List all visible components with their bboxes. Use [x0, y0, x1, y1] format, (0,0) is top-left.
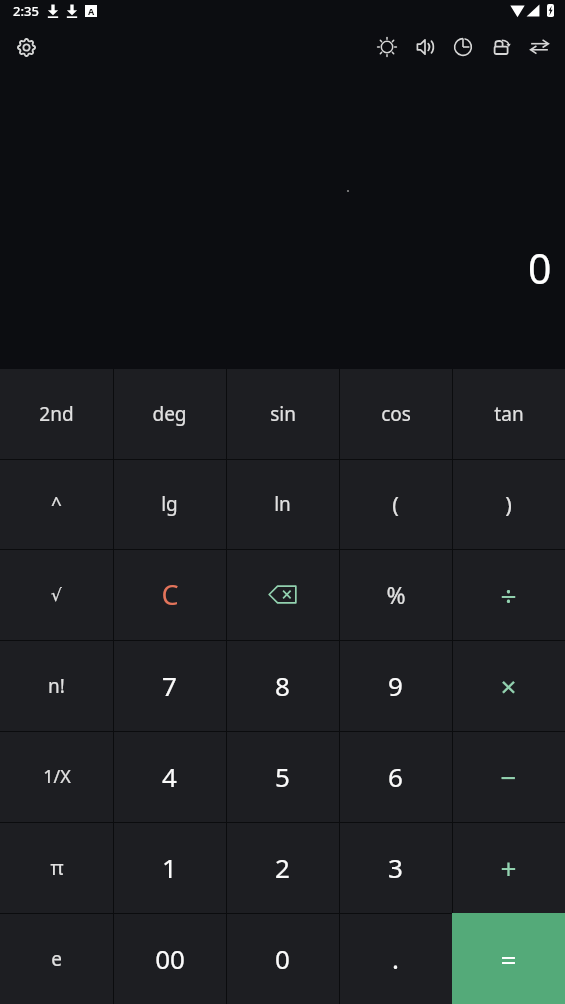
button[interactable]: + [452, 822, 565, 913]
button[interactable]: 6 [339, 731, 452, 822]
staticText: 9 [388, 668, 403, 703]
staticText: 6 [388, 759, 403, 794]
staticText: 2:35 [13, 2, 39, 20]
staticText: . [392, 941, 399, 976]
staticText: 5 [275, 759, 290, 794]
staticText: √ [51, 585, 62, 605]
staticText: A [88, 5, 95, 17]
staticText: + [500, 849, 517, 887]
staticText: − [500, 758, 517, 796]
button[interactable]: . [339, 913, 452, 1004]
button[interactable]: 2nd [0, 369, 113, 459]
staticText: 7 [162, 668, 177, 703]
button[interactable]: Brightness [368, 28, 406, 66]
button[interactable]: π [0, 822, 113, 913]
staticText: 1/X [43, 764, 71, 789]
button[interactable]: − [452, 731, 565, 822]
button[interactable]: 1/X [0, 731, 113, 822]
button[interactable]: tan [452, 369, 565, 459]
staticText: % [386, 579, 406, 610]
button[interactable]: Sound [406, 28, 444, 66]
button[interactable]: ÷ [452, 549, 565, 640]
staticText: 2nd [39, 401, 74, 427]
staticText: 8 [275, 668, 290, 703]
staticText: π [50, 854, 64, 881]
button[interactable]: 3 [339, 822, 452, 913]
staticText: × [500, 667, 517, 705]
button[interactable]: ln [226, 459, 339, 549]
button[interactable]: sin [226, 369, 339, 459]
button[interactable]: 7 [113, 640, 226, 731]
staticText: ) [505, 489, 512, 519]
button[interactable]: Unit converter [520, 28, 558, 66]
button[interactable]: Settings [8, 29, 44, 65]
button[interactable]: Backspace [226, 549, 339, 640]
button[interactable]: 0 [226, 913, 339, 1004]
staticText: ÷ [500, 576, 517, 614]
staticText: 2 [275, 850, 290, 885]
staticText: 4 [162, 759, 177, 794]
staticText: = [500, 940, 517, 978]
staticText: C [161, 576, 179, 613]
button[interactable]: 8 [226, 640, 339, 731]
button[interactable]: ^ [0, 459, 113, 549]
staticText: lg [161, 491, 178, 517]
button[interactable]: Screen rotation lock [482, 28, 520, 66]
button[interactable]: 2 [226, 822, 339, 913]
button[interactable]: 5 [226, 731, 339, 822]
staticText: e [51, 946, 62, 972]
button[interactable]: deg [113, 369, 226, 459]
button[interactable]: C [113, 549, 226, 640]
staticText: n! [48, 673, 65, 699]
button[interactable]: × [452, 640, 565, 731]
staticText: cos [381, 401, 411, 427]
staticText: ^ [51, 491, 62, 517]
button[interactable]: √ [0, 549, 113, 640]
button[interactable]: ( [339, 459, 452, 549]
staticText: ln [274, 491, 291, 517]
staticText: 1 [162, 850, 177, 885]
button[interactable]: ) [452, 459, 565, 549]
staticText: 0 [528, 240, 552, 296]
button[interactable]: History [444, 28, 482, 66]
button[interactable]: 9 [339, 640, 452, 731]
button[interactable]: lg [113, 459, 226, 549]
staticText: deg [152, 401, 187, 427]
staticText: 00 [155, 941, 185, 976]
staticText: tan [494, 401, 524, 427]
staticText: ( [392, 489, 399, 519]
button[interactable]: e [0, 913, 113, 1004]
button[interactable]: cos [339, 369, 452, 459]
button[interactable]: = [452, 913, 565, 1004]
button[interactable]: % [339, 549, 452, 640]
button[interactable]: n! [0, 640, 113, 731]
staticText: 3 [388, 850, 403, 885]
staticText: sin [270, 401, 296, 427]
button[interactable]: 00 [113, 913, 226, 1004]
button[interactable]: 1 [113, 822, 226, 913]
button[interactable]: 4 [113, 731, 226, 822]
staticText: 0 [275, 941, 290, 976]
